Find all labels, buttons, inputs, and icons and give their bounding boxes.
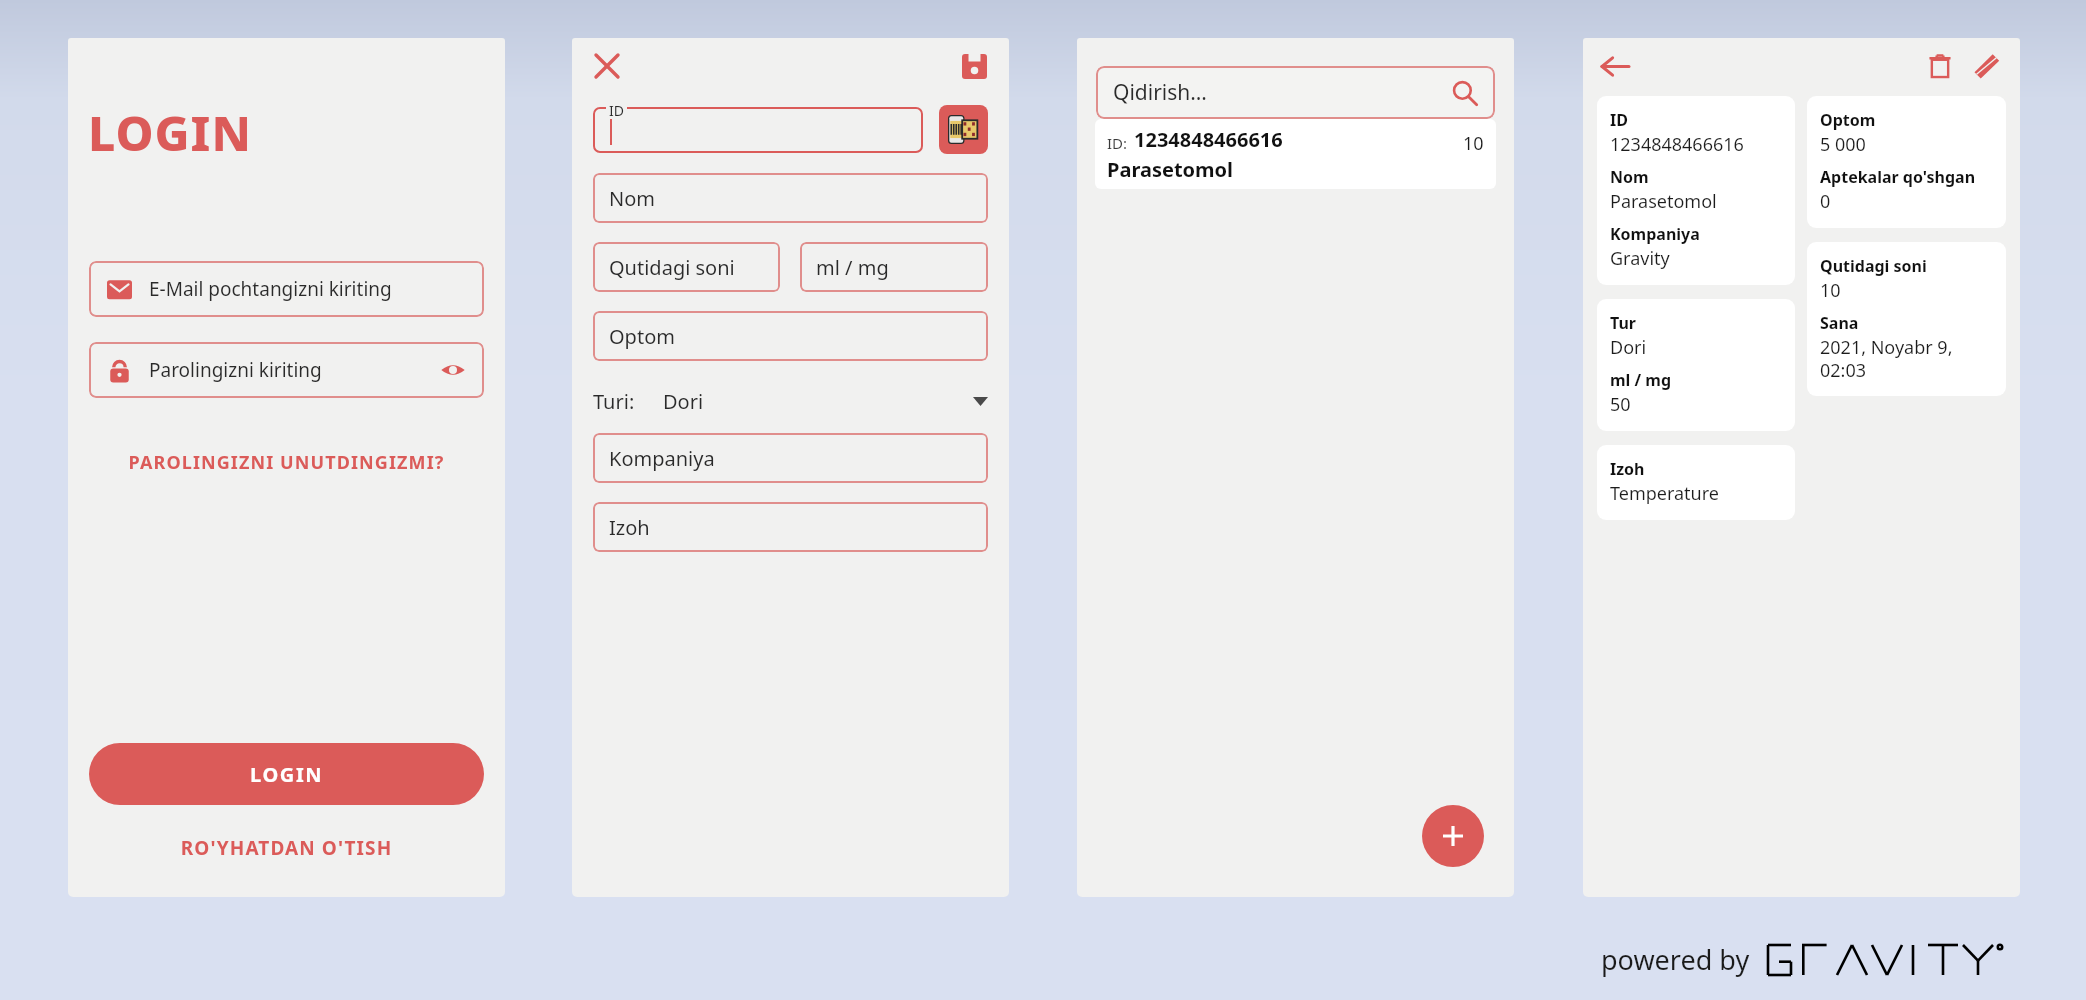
staticText: Tur: [1610, 312, 1636, 334]
button[interactable]: Izoh: [1597, 445, 1795, 520]
staticText: LOGIN: [88, 100, 252, 165]
button[interactable]: E-Mail pochtangizni kiriting: [89, 261, 484, 317]
staticText: Kompaniya: [609, 445, 715, 472]
button[interactable]: [593, 107, 923, 153]
staticText: 1234848466616: [1610, 132, 1744, 157]
button[interactable]: Back: [1601, 52, 1630, 81]
button[interactable]: Turi:: [593, 385, 988, 417]
staticText: Optom: [1820, 109, 1876, 131]
button[interactable]: Delete: [1928, 54, 1952, 78]
other: Search: [1452, 80, 1478, 106]
staticText: Qidirish…: [1113, 78, 1452, 107]
button[interactable]: ID:: [1095, 119, 1496, 189]
button[interactable]: Izoh: [593, 502, 988, 552]
button[interactable]: Save: [962, 54, 987, 79]
button[interactable]: Qutidagi soni: [593, 242, 780, 292]
button[interactable]: Edit: [1974, 53, 2000, 79]
staticText: 2021, Noyabr 9, 02:03: [1820, 335, 1998, 382]
button[interactable]: Parolingizni kiriting: [89, 342, 484, 398]
staticText: Izoh: [609, 514, 650, 541]
button[interactable]: Optom: [1807, 96, 2006, 228]
staticText: Qutidagi soni: [609, 254, 735, 281]
staticText: Kompaniya: [1610, 223, 1700, 245]
button[interactable]: Add: [1422, 805, 1484, 867]
staticText: ID:: [1107, 133, 1128, 153]
staticText: ID: [609, 101, 624, 120]
button[interactable]: Nom: [593, 173, 988, 223]
button[interactable]: Tur: [1597, 299, 1795, 431]
button[interactable]: RO'YHATDAN O'TISH: [68, 835, 505, 861]
staticText: LOGIN: [250, 761, 324, 788]
staticText: 10: [1463, 131, 1484, 156]
staticText: Temperature: [1610, 481, 1719, 506]
staticText: Dori: [663, 388, 704, 415]
button[interactable]: Kompaniya: [593, 433, 988, 483]
staticText: 5 000: [1820, 132, 1866, 157]
staticText: 10: [1820, 278, 1841, 303]
button[interactable]: Qutidagi soni: [1807, 242, 2006, 396]
staticText: 0: [1820, 189, 1831, 214]
button[interactable]: Close: [594, 53, 620, 79]
staticText: ml / mg: [816, 254, 889, 281]
staticText: Optom: [609, 323, 675, 350]
staticText: powered by: [1601, 941, 1750, 978]
staticText: 1234848466616: [1134, 126, 1283, 153]
staticText: Qutidagi soni: [1820, 255, 1927, 277]
staticText: PAROLINGIZNI UNUTDINGIZMI?: [68, 450, 505, 475]
button[interactable]: ml / mg: [800, 242, 988, 292]
staticText: E-Mail pochtangizni kiriting: [149, 276, 466, 302]
button[interactable]: ID: [1597, 96, 1795, 285]
staticText: Parasetomol: [1610, 189, 1717, 214]
button[interactable]: Scan barcode: [939, 105, 988, 154]
staticText: Gravity: [1610, 246, 1670, 271]
other: Show password: [440, 357, 466, 383]
staticText: Sana: [1820, 312, 1859, 334]
staticText: Parasetomol: [1107, 156, 1234, 183]
staticText: Parolingizni kiriting: [149, 357, 440, 383]
button[interactable]: Optom: [593, 311, 988, 361]
staticText: Aptekalar qo'shgan: [1820, 166, 1976, 188]
staticText: ID: [1610, 109, 1628, 131]
staticText: Dori: [1610, 335, 1647, 360]
staticText: ml / mg: [1610, 369, 1672, 391]
staticText: Nom: [1610, 166, 1649, 188]
staticText: 50: [1610, 392, 1631, 417]
staticText: Nom: [609, 185, 655, 212]
button[interactable]: LOGIN: [89, 743, 484, 805]
staticText: Izoh: [1610, 458, 1645, 480]
staticText: Turi:: [593, 388, 635, 415]
button[interactable]: Qidirish…: [1096, 66, 1495, 119]
